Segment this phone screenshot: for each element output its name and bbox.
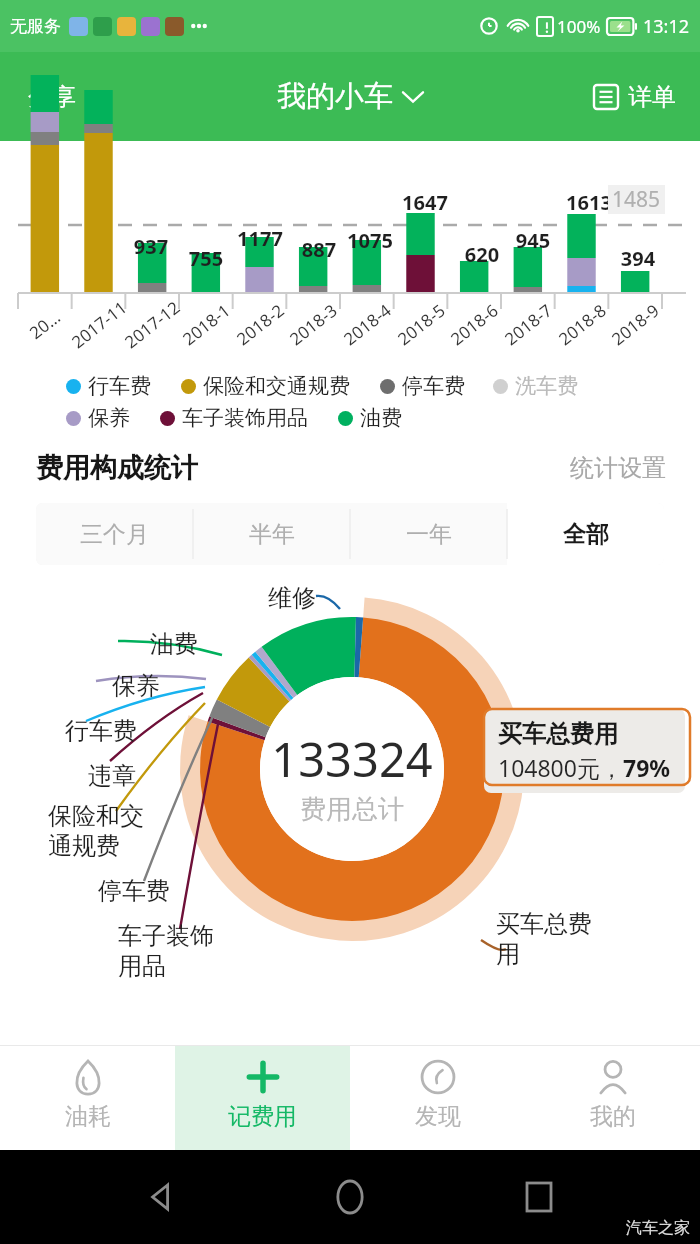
staticText: 945 [505,227,561,254]
button[interactable]: 详单 [587,76,682,118]
staticText: 394 [610,245,666,272]
staticText: 2018-2 [232,298,289,350]
button[interactable]: 统计设置 [566,449,670,487]
staticText: 755 [178,245,234,272]
staticText: 1647 [397,189,453,216]
staticText: 1177 [232,225,288,252]
staticText: 2018-8 [554,298,611,350]
staticText: 79% [623,752,671,783]
staticText: 无服务 [10,16,61,37]
button[interactable]: 全部 [507,503,664,565]
staticText: 2018-1 [178,298,235,350]
staticText: 保养 [112,671,160,701]
staticText: 费用总计 [300,793,404,826]
button[interactable]: 一年 [350,503,507,565]
staticText: 保险和交 通规费 [48,801,144,862]
staticText: 937 [123,233,179,260]
staticText: 分享 [28,82,76,112]
staticText: 汽车之家 [626,1218,690,1238]
button[interactable]: 分享 [22,76,82,118]
staticText: 记费用 [228,1102,297,1131]
staticText: 2018-9 [607,298,664,350]
staticText: 2018-7 [500,298,557,350]
button[interactable]: 油费 [338,405,402,431]
staticText: 887 [291,236,347,263]
staticText: 买车总费用 [498,719,618,749]
button[interactable]: 三个月 [36,503,193,565]
button[interactable]: 油耗 [0,1046,175,1150]
button[interactable]: 记费用 [175,1046,350,1150]
staticText: 一年 [406,520,452,549]
staticText: 1075 [342,227,398,254]
staticText: 洗车费 [515,373,578,399]
button[interactable]: 买车总费用 [484,709,685,793]
button[interactable]: 停车费 [380,373,465,399]
staticText: 我的小车 [277,78,393,115]
staticText: 2018-3 [285,298,342,350]
button[interactable]: 发现 [350,1046,525,1150]
staticText: 停车费 [98,876,170,906]
button[interactable]: 保险和交通规费 [181,373,350,399]
staticText: 100% [557,15,601,38]
staticText: 20... [24,305,65,344]
staticText: 620 [454,241,510,268]
staticText: 违章 [88,761,136,791]
button[interactable]: 我的 [525,1046,700,1150]
button[interactable]: 半年 [193,503,350,565]
button[interactable]: Back [133,1169,189,1225]
button[interactable]: 我的小车 [271,72,429,121]
staticText: 车子装饰 用品 [118,921,214,982]
staticText: 详单 [628,82,676,112]
staticText: 2018-4 [339,298,396,350]
staticText: 2017-11 [67,296,131,353]
staticText: 104800元， [498,752,623,783]
staticText: 2018-6 [446,298,503,350]
staticText: 13:12 [643,14,690,39]
staticText: 发现 [415,1102,461,1131]
staticText: 油费 [150,629,198,659]
button[interactable]: 车子装饰用品 [160,405,308,431]
staticText: 半年 [249,520,295,549]
staticText: 买车总费 用 [496,909,592,970]
staticText: 统计设置 [570,453,666,483]
button[interactable]: Recents [511,1169,567,1225]
staticText: 2017-12 [120,296,184,353]
staticText: 油耗 [65,1102,111,1131]
staticText: 三个月 [80,520,149,549]
staticText: 我的 [590,1102,636,1131]
button[interactable]: 保养 [66,405,130,431]
staticText: 1613 [561,189,617,216]
staticText: 费用构成统计 [36,451,198,485]
staticText: 行车费 [65,716,137,746]
staticText: 1485 [612,185,661,214]
staticText: 油费 [360,405,402,431]
staticText: 维修 [268,583,316,613]
button[interactable]: Home [322,1169,378,1225]
staticText: 保养 [88,405,130,431]
staticText: 保险和交通规费 [203,373,350,399]
staticText: 车子装饰用品 [182,405,308,431]
staticText: 2018-5 [393,298,450,350]
button[interactable]: 行车费 [66,373,151,399]
button[interactable]: 洗车费 [493,373,578,399]
staticText: 全部 [563,520,609,549]
staticText: 133324 [271,727,433,791]
staticText: 行车费 [88,373,151,399]
staticText: 停车费 [402,373,465,399]
